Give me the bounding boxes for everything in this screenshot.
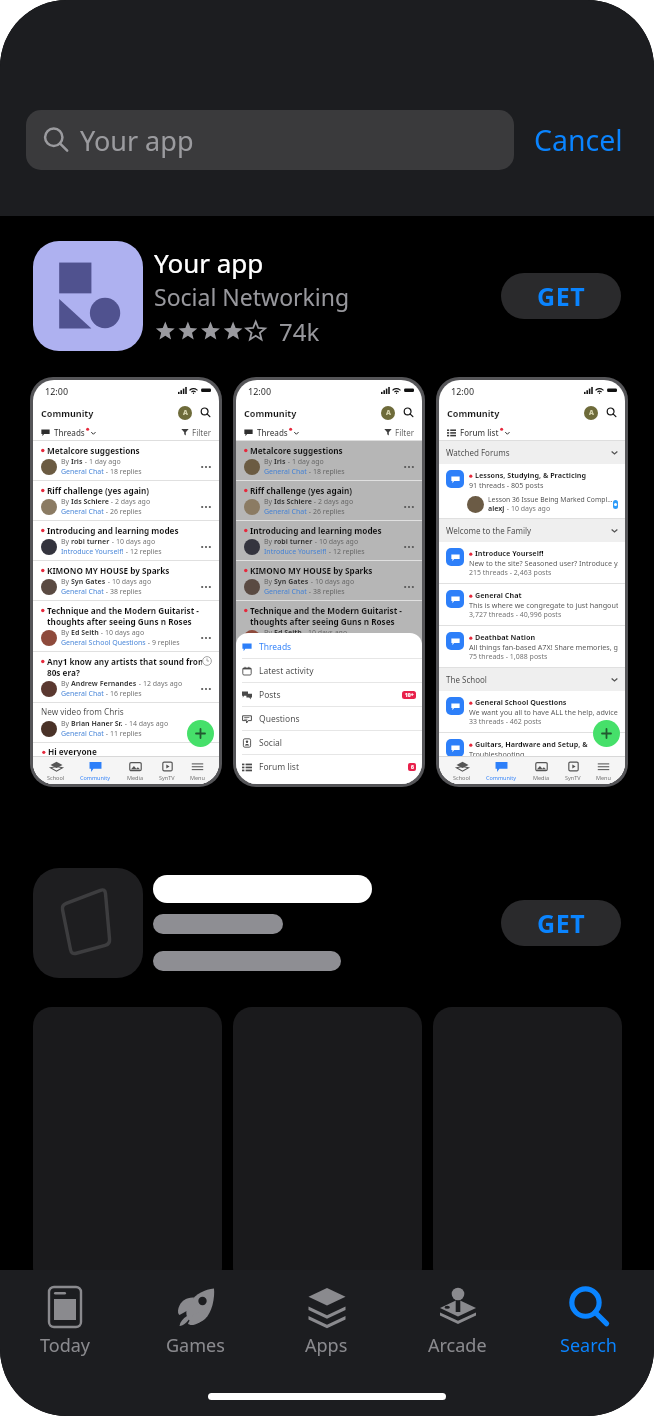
button[interactable]: Introduce Yourself! (439, 542, 625, 583)
staticText: Community (486, 774, 517, 781)
staticText: Any1 know any artists that sound from th… (250, 656, 405, 667)
button[interactable]: School (45, 760, 67, 781)
button[interactable]: Watched Forums (439, 441, 625, 464)
staticText: Menu (190, 774, 205, 781)
button[interactable]: Create new post (187, 720, 214, 747)
button[interactable]: Arcade (392, 1283, 523, 1360)
button[interactable]: Threads (236, 635, 422, 658)
other: Search (200, 407, 211, 418)
staticText: Andrew Fernandes (274, 679, 340, 689)
button[interactable]: Riff challenge (yes again) (236, 481, 422, 520)
staticText: Filter (192, 427, 211, 438)
staticText: - 11 replies (307, 729, 345, 739)
button[interactable]: SynTV (563, 760, 583, 781)
staticText: 12:00 (248, 385, 272, 397)
staticText: KIMONO MY HOUSE by Sparks (250, 565, 373, 576)
button[interactable]: Deathbat Nation (439, 626, 625, 667)
staticText: Menu (596, 774, 611, 781)
button[interactable]: General Chat (439, 584, 625, 625)
button[interactable]: Technique and the Modern Guitarist - (33, 601, 219, 651)
staticText: Guitars, Hardware and Setup, & (475, 739, 588, 749)
staticText: Latest activity (259, 665, 314, 677)
button[interactable]: SynTV (157, 760, 177, 781)
staticText: Ids Schiere (71, 497, 109, 507)
button[interactable]: Apps (261, 1283, 392, 1360)
staticText: robi turner (71, 537, 110, 547)
button[interactable]: Cancel (534, 113, 623, 168)
staticText: Andrew Fernandes (71, 679, 137, 689)
button[interactable]: GET (0, 868, 654, 978)
staticText: 80s era? (250, 667, 283, 678)
staticText: We want you all to have ALL the help, ad… (469, 707, 618, 717)
button[interactable]: Games (130, 1283, 261, 1360)
button[interactable]: Latest activity (236, 659, 422, 682)
button[interactable]: Community (78, 760, 113, 781)
staticText: By (264, 577, 274, 587)
button[interactable]: Welcome to the Family (439, 519, 625, 542)
button[interactable]: Create new post (593, 720, 620, 747)
button[interactable]: Technique and the Modern Guitarist - (236, 601, 422, 651)
button[interactable]: Your app (26, 110, 514, 170)
button[interactable]: Metalcore suggestions (236, 441, 422, 480)
button[interactable]: KIMONO MY HOUSE by Sparks (236, 561, 422, 600)
staticText: Search (560, 1333, 617, 1358)
button[interactable]: Lessons, Studying, & Practicing (439, 464, 625, 495)
button[interactable]: The School (439, 668, 625, 691)
button[interactable]: Posts (236, 683, 422, 706)
button[interactable]: Media (531, 760, 551, 781)
staticText: - 38 replies (104, 587, 142, 597)
button[interactable]: Any1 know any artists that sound from th… (33, 652, 219, 702)
button[interactable]: 12:00 (436, 377, 628, 787)
staticText: 10+ (405, 692, 414, 699)
button[interactable]: 12:00 (30, 377, 222, 787)
button[interactable]: KIMONO MY HOUSE by Sparks (33, 561, 219, 600)
button[interactable]: Today (0, 1283, 130, 1360)
button[interactable]: Any1 know any artists that sound from th… (236, 652, 422, 702)
staticText: Lessons, Studying, & Practicing (475, 470, 587, 480)
staticText: 3,727 threads - 40,996 posts (469, 610, 562, 620)
staticText: Welcome to the Family (446, 525, 532, 536)
button[interactable]: GET (501, 900, 621, 946)
staticText: Your app (80, 122, 194, 159)
other: Search (606, 407, 617, 418)
staticText: Hi everyone (48, 746, 97, 757)
staticText: By (264, 457, 274, 467)
button[interactable]: Menu (188, 760, 207, 781)
staticText: - 14 days ago (123, 719, 169, 729)
staticText: General Chat (61, 729, 104, 739)
staticText: Community (244, 407, 297, 419)
button[interactable]: New video from Chris (33, 703, 219, 742)
staticText: thoughts after seeing Guns n Roses (250, 616, 395, 627)
button[interactable]: App preview 1 (33, 1007, 222, 1287)
button[interactable]: Social (236, 731, 422, 754)
staticText: - 12 days ago (340, 679, 386, 689)
staticText: 33 threads - 462 posts (469, 717, 542, 727)
staticText: thoughts after seeing Guns n Roses (47, 616, 192, 627)
staticText: - 2 days ago (109, 497, 151, 507)
staticText: Threads (54, 427, 85, 438)
button[interactable]: GET (501, 273, 621, 319)
button[interactable]: School (451, 760, 473, 781)
staticText: Games (166, 1333, 225, 1358)
button[interactable]: Introducing and learning modes (236, 521, 422, 560)
staticText: General Chat (264, 467, 307, 477)
button[interactable]: Community (484, 760, 519, 781)
button[interactable]: Search (523, 1283, 654, 1360)
button[interactable]: Introducing and learning modes (33, 521, 219, 560)
button[interactable]: Riff challenge (yes again) (33, 481, 219, 520)
button[interactable]: 12:00 (233, 377, 425, 787)
button[interactable]: Forum list (236, 755, 422, 778)
button[interactable]: Questions (236, 707, 422, 730)
button[interactable]: Guitars, Hardware and Setup, & (439, 733, 625, 764)
staticText: Introducing and learning modes (47, 525, 179, 536)
button[interactable]: General School Questions (439, 691, 625, 732)
button[interactable]: New video from Chris (236, 703, 422, 742)
staticText: - 10 days ago (99, 628, 145, 638)
button[interactable]: Menu (594, 760, 613, 781)
button[interactable]: Metalcore suggestions (33, 441, 219, 480)
button[interactable]: Your app (0, 241, 654, 351)
button[interactable]: Media (125, 760, 145, 781)
